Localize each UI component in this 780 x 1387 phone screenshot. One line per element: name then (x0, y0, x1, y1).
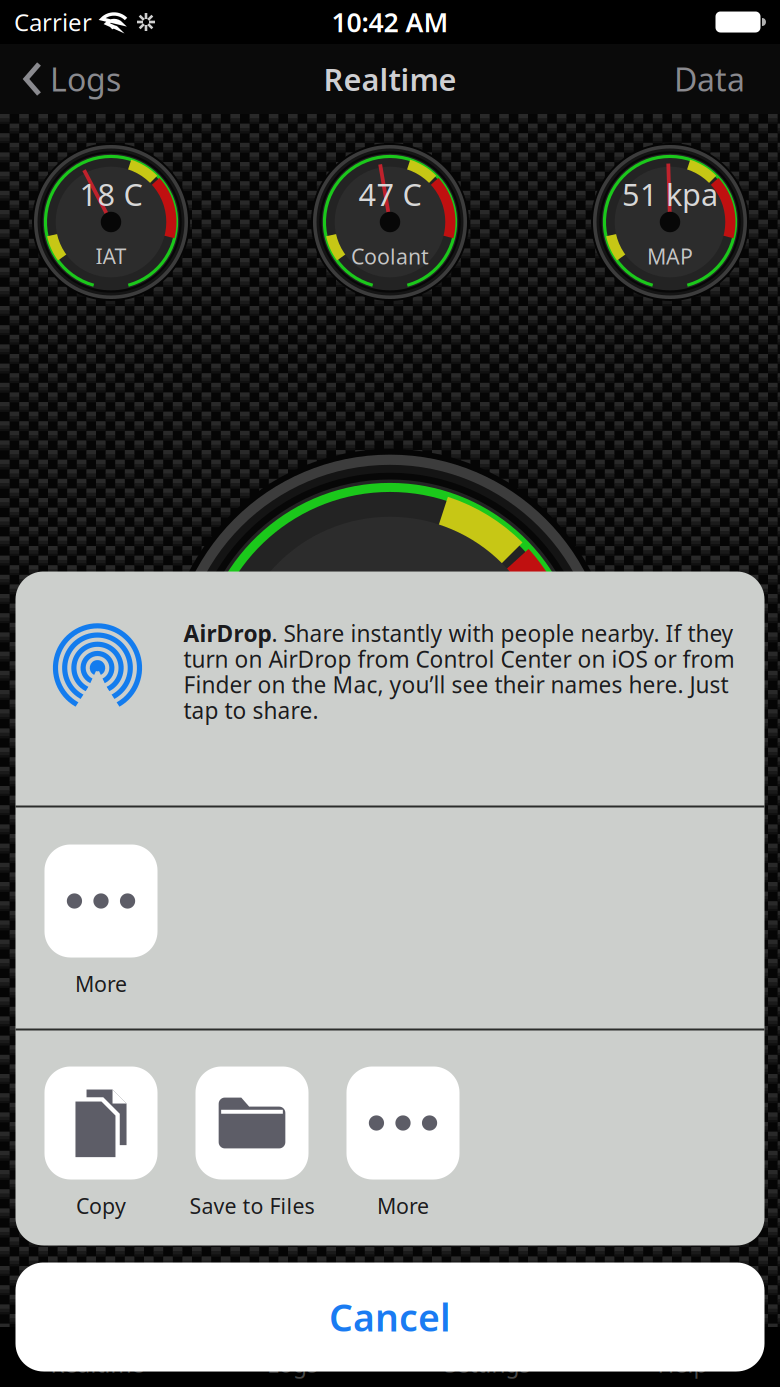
staticText: Logs (267, 1349, 318, 1379)
staticText: Settings (444, 1349, 530, 1379)
button[interactable]: Help (585, 1327, 780, 1387)
staticText: MAP (647, 242, 693, 270)
staticText: Logs (50, 58, 121, 100)
staticText: Save to Files (189, 1191, 314, 1220)
staticText: IAT (95, 242, 126, 270)
button[interactable]: Logs (0, 47, 143, 111)
staticText: 1152 (342, 566, 438, 621)
button[interactable]: Settings (390, 1327, 585, 1387)
staticText: Cancel (329, 1292, 451, 1342)
button[interactable]: More (327, 1066, 478, 1220)
staticText: 47 C (358, 174, 421, 214)
staticText: Help (657, 1349, 707, 1379)
button[interactable]: Save to Files (176, 1066, 327, 1220)
button[interactable]: Copy (25, 1066, 176, 1220)
staticText: AirDrop. Share instantly with people nea… (183, 620, 734, 723)
staticText: Copy (76, 1191, 126, 1220)
staticText: 10:42 AM (331, 4, 448, 40)
staticText: Data (674, 58, 745, 100)
button[interactable]: Data (639, 47, 780, 111)
staticText: More (75, 969, 127, 998)
staticText: 18 C (79, 174, 142, 214)
button[interactable]: Logs (195, 1327, 390, 1387)
staticText: More (377, 1191, 429, 1220)
staticText: Realtime (50, 1349, 144, 1379)
button[interactable]: Cancel (15, 1262, 764, 1371)
staticText: Coolant (351, 242, 429, 270)
button[interactable]: More (25, 844, 176, 998)
staticText: Realtime (323, 59, 456, 99)
staticText: Carrier (14, 6, 92, 38)
button[interactable]: Realtime (0, 1327, 195, 1387)
staticText: 51 kpa (622, 174, 718, 214)
